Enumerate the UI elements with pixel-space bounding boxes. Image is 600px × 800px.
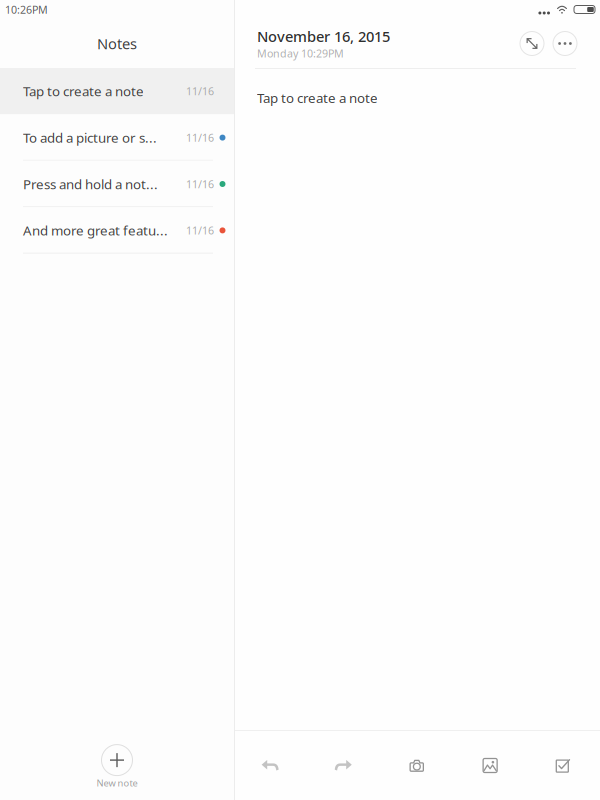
staticText: Monday 10:29PM — [257, 46, 344, 60]
staticText: 11/16 — [186, 177, 214, 191]
button[interactable]: Press and hold a not... — [0, 161, 234, 207]
button[interactable]: More options — [553, 31, 577, 55]
button[interactable]: Undo — [247, 743, 293, 787]
button[interactable]: Redo — [320, 743, 366, 787]
staticText: New note — [96, 777, 137, 789]
staticText: 11/16 — [186, 223, 214, 237]
staticText: And more great featu... — [23, 221, 168, 239]
button[interactable]: Tap to create a note — [0, 68, 234, 114]
button[interactable]: Expand — [520, 31, 544, 55]
button[interactable]: Take photo — [394, 743, 440, 787]
staticText: Tap to create a note — [257, 89, 378, 107]
staticText: November 16, 2015 — [257, 27, 390, 46]
button[interactable]: Checklist — [540, 743, 586, 787]
button[interactable]: New note — [0, 732, 234, 800]
staticText: 11/16 — [186, 84, 214, 98]
staticText: 11/16 — [186, 130, 214, 145]
staticText: Tap to create a note — [23, 82, 144, 100]
button[interactable]: To add a picture or s... — [0, 114, 234, 161]
staticText: Notes — [97, 34, 137, 53]
staticText: Press and hold a not... — [23, 175, 158, 193]
button[interactable]: Insert image — [467, 743, 513, 787]
staticText: 10:26PM — [5, 2, 48, 17]
staticText: To add a picture or s... — [23, 129, 157, 146]
button[interactable]: And more great featu... — [0, 207, 234, 254]
